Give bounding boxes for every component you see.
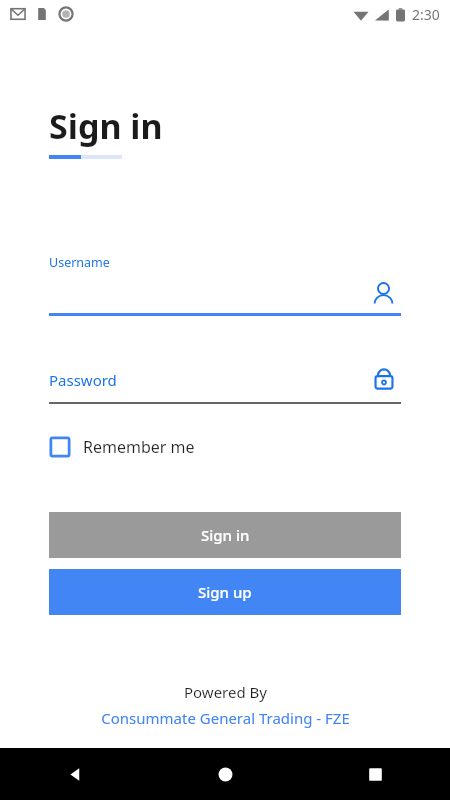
staticText: Password <box>49 370 117 390</box>
button[interactable]: Recent apps <box>300 748 450 800</box>
staticText: Sign up <box>198 582 252 602</box>
staticText: Sign in <box>49 103 163 149</box>
button[interactable]: Remember me <box>49 431 195 463</box>
staticText: Powered By <box>184 682 267 702</box>
button[interactable]: Consummate General Trading - FZE <box>101 708 350 728</box>
staticText: 2:30 <box>412 5 440 24</box>
staticText: Remember me <box>83 436 195 458</box>
staticText: Username <box>49 254 110 271</box>
button[interactable]: Back <box>0 748 150 800</box>
button[interactable]: Sign in <box>49 512 401 558</box>
staticText: Consummate General Trading - FZE <box>101 708 350 728</box>
button[interactable]: Username <box>49 250 401 316</box>
button[interactable]: Home <box>150 748 300 800</box>
button[interactable]: Password <box>49 362 401 404</box>
button[interactable]: Sign up <box>49 569 401 615</box>
staticText: Sign in <box>201 525 250 545</box>
